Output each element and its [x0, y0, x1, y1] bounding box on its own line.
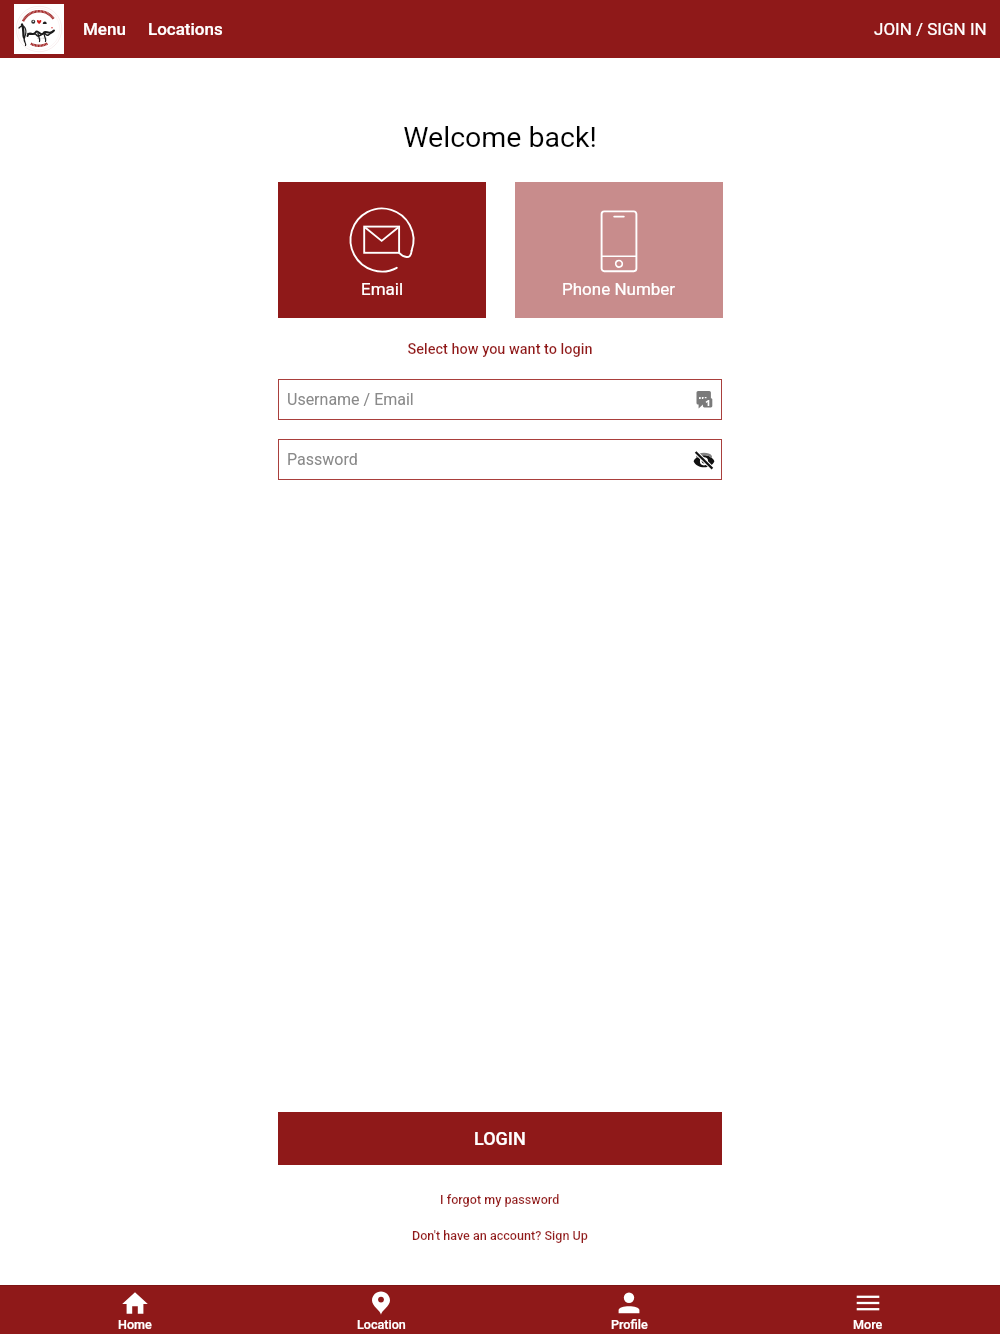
- button[interactable]: Profile: [500, 1285, 750, 1334]
- button[interactable]: JOIN / SIGN IN: [869, 10, 992, 48]
- staticText: Location: [357, 1317, 406, 1332]
- button[interactable]: Password: [278, 439, 722, 480]
- staticText: Email: [361, 279, 404, 299]
- button[interactable]: Location: [250, 1285, 500, 1334]
- button[interactable]: Keyboard: [691, 387, 717, 413]
- button[interactable]: Username / Email: [278, 379, 722, 420]
- button[interactable]: Arpeggio home: [14, 4, 64, 54]
- button[interactable]: Don't have an account? Sign Up: [402, 1223, 598, 1248]
- staticText: Select how you want to login: [0, 341, 1000, 358]
- staticText: More: [853, 1317, 883, 1332]
- button[interactable]: Email: [278, 182, 486, 318]
- button[interactable]: Home: [0, 1285, 250, 1334]
- staticText: Username / Email: [287, 390, 414, 409]
- staticText: Profile: [611, 1317, 648, 1332]
- button[interactable]: LOGIN: [278, 1112, 722, 1165]
- staticText: Welcome back!: [0, 121, 1000, 154]
- button[interactable]: Phone Number: [515, 182, 723, 318]
- staticText: LOGIN: [474, 1128, 526, 1149]
- staticText: Password: [287, 450, 358, 469]
- button[interactable]: Show password: [691, 447, 717, 473]
- button[interactable]: More: [750, 1285, 1000, 1334]
- button[interactable]: Menu: [78, 10, 131, 48]
- button[interactable]: Locations: [143, 10, 228, 48]
- staticText: Phone Number: [562, 279, 676, 299]
- staticText: Home: [118, 1317, 152, 1332]
- button[interactable]: I forgot my password: [430, 1187, 570, 1212]
